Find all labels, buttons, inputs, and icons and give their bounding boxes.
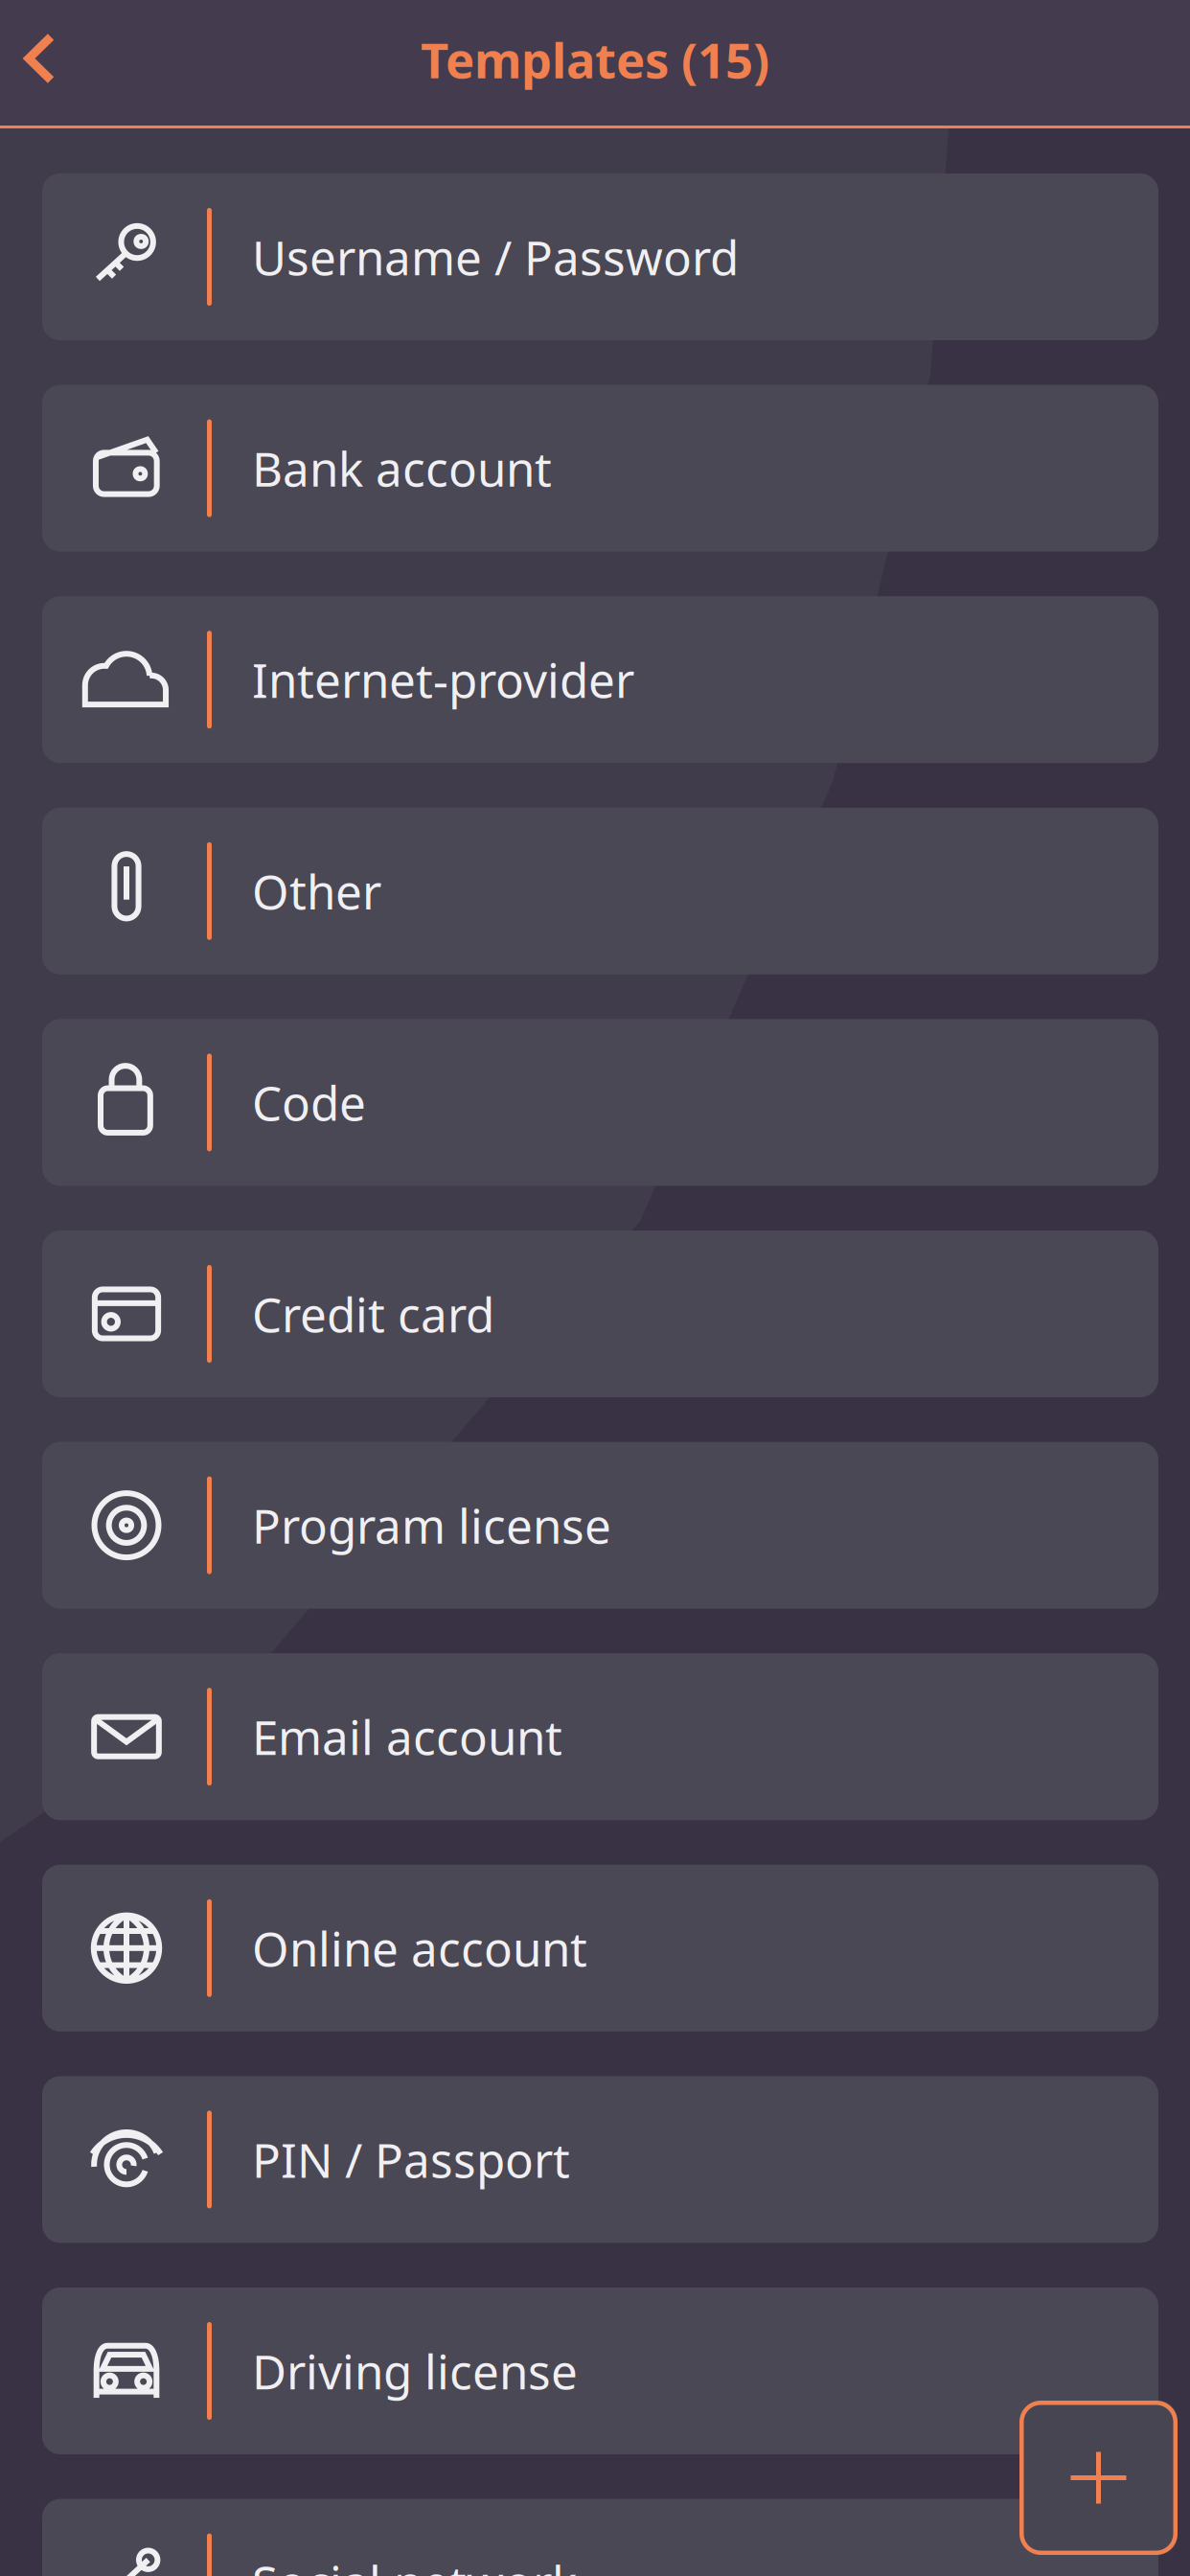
staticText: Templates (15) <box>421 27 769 92</box>
button[interactable]: Code <box>42 1019 1158 1186</box>
staticText: Internet-provider <box>252 648 634 711</box>
button[interactable]: Add template <box>1019 2401 1178 2555</box>
button[interactable]: Email account <box>42 1653 1158 1820</box>
staticText: Code <box>252 1071 366 1134</box>
button[interactable]: Username / Password <box>42 173 1158 340</box>
button[interactable]: Social network <box>42 2499 1158 2576</box>
staticText: Credit card <box>252 1282 494 1345</box>
button[interactable]: Internet-provider <box>42 596 1158 763</box>
staticText: PIN / Passport <box>252 2128 570 2191</box>
button[interactable]: Bank account <box>42 385 1158 552</box>
button[interactable]: Back <box>0 8 83 120</box>
staticText: Program license <box>252 1494 611 1557</box>
staticText: Email account <box>252 1705 562 1768</box>
staticText: Driving license <box>252 2339 578 2402</box>
button[interactable]: Program license <box>42 1442 1158 1609</box>
button[interactable]: Driving license <box>42 2288 1158 2454</box>
button[interactable]: Credit card <box>42 1230 1158 1397</box>
staticText: Bank account <box>252 437 552 500</box>
button[interactable]: PIN / Passport <box>42 2076 1158 2243</box>
staticText: Username / Password <box>252 225 739 288</box>
staticText: Other <box>252 860 381 922</box>
button[interactable]: Other <box>42 808 1158 974</box>
staticText: Online account <box>252 1917 587 1979</box>
staticText: Social network <box>252 2551 577 2576</box>
button[interactable]: Online account <box>42 1865 1158 2031</box>
